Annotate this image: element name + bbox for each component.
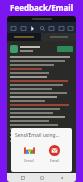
staticText: Email [50,158,59,163]
staticText: Gmail [24,158,34,163]
button[interactable]: Toolbar action 3 [38,24,46,32]
button[interactable]: Install [10,43,73,54]
button[interactable]: Toolbar action 0 [9,24,17,32]
button[interactable] [7,33,41,41]
staticText: Send/Email using... [15,132,60,139]
button[interactable]: Toolbar action 6 [66,24,74,32]
button[interactable]: Toolbar action 4 [47,24,55,32]
button[interactable]: Toolbar action 5 [57,24,65,32]
button[interactable]: Home [37,173,46,182]
button[interactable]: Gmail [17,144,41,164]
button[interactable]: Email [42,144,66,164]
button[interactable]: Recents [18,173,27,182]
button[interactable]: Toolbar action 1 [19,24,27,32]
button[interactable]: Back [57,173,66,182]
button[interactable]: Toolbar action 2 [28,24,36,32]
button[interactable] [41,33,76,41]
staticText: Feedback/Email [10,2,74,13]
button[interactable]: Install [57,46,73,52]
